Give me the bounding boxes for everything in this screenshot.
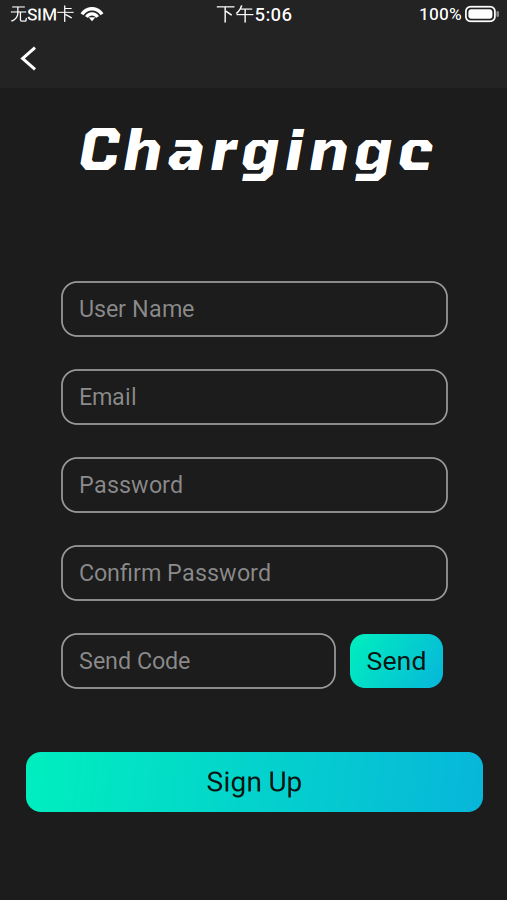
button[interactable]: Back	[8, 34, 50, 83]
button[interactable]: Sign Up	[26, 752, 483, 812]
staticText: Confirm Password	[79, 559, 271, 587]
staticText: Sign Up	[206, 766, 302, 798]
staticText: Password	[79, 471, 183, 499]
button[interactable]: Password	[62, 458, 447, 512]
staticText: Send	[366, 645, 426, 677]
button[interactable]: Send	[350, 634, 443, 688]
staticText: Chargingc	[76, 113, 430, 181]
staticText: Send Code	[79, 647, 190, 675]
button[interactable]: Email	[62, 370, 447, 424]
staticText: 100%	[419, 4, 462, 24]
button[interactable]: Send Code	[62, 634, 335, 688]
staticText: Email	[79, 383, 137, 411]
staticText: User Name	[79, 295, 194, 323]
button[interactable]: User Name	[62, 282, 447, 336]
staticText: 无SIM卡	[10, 3, 74, 25]
button[interactable]: Confirm Password	[62, 546, 447, 600]
staticText: 下午5:06	[216, 2, 292, 26]
